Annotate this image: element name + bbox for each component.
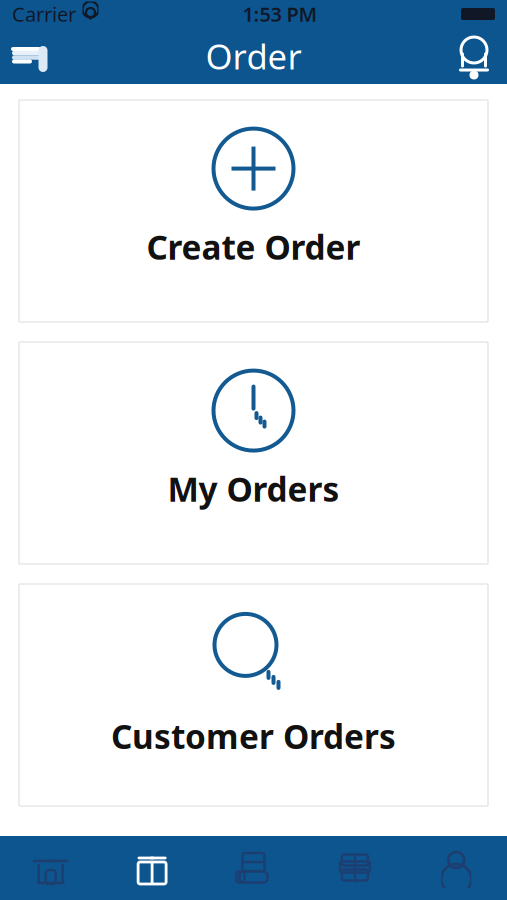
- staticText: Order: [205, 33, 301, 79]
- staticText: Customer Orders: [111, 714, 396, 758]
- button[interactable]: Create Order: [19, 100, 488, 322]
- staticText: Carrier: [12, 1, 76, 27]
- button[interactable]: Inventory: [304, 836, 406, 900]
- button[interactable]: Profile: [406, 836, 507, 900]
- button[interactable]: Notifications: [443, 29, 507, 83]
- button[interactable]: Deliveries: [203, 836, 304, 900]
- button[interactable]: Home: [0, 836, 101, 900]
- staticText: Create Order: [146, 225, 360, 269]
- button[interactable]: Customer Orders: [19, 584, 488, 806]
- button[interactable]: My Orders: [19, 342, 488, 564]
- staticText: 1:53 PM: [242, 1, 317, 27]
- button[interactable]: Orders: [101, 836, 203, 900]
- staticText: My Orders: [167, 467, 339, 511]
